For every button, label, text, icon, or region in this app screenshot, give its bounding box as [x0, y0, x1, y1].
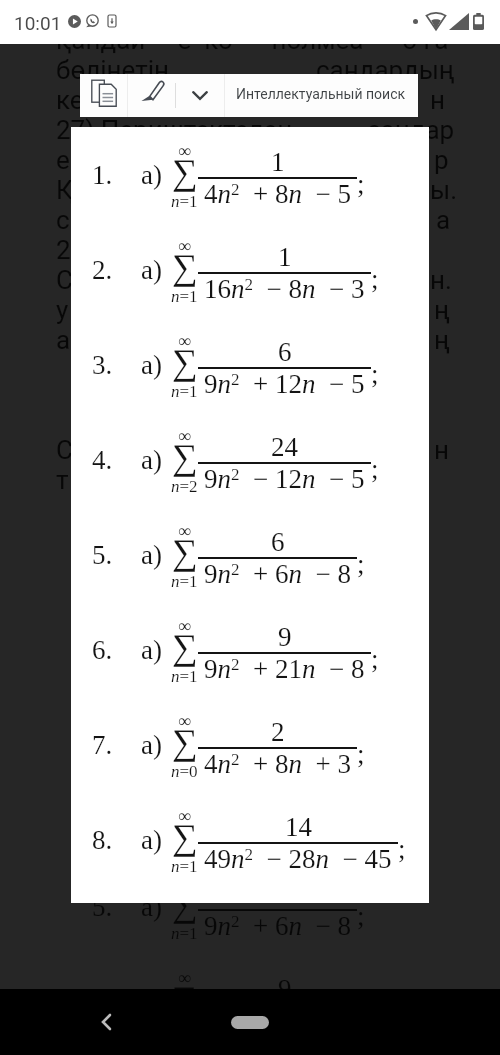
staticText: a)	[141, 350, 162, 380]
staticText: ке	[56, 85, 84, 115]
staticText: ∞	[178, 806, 191, 826]
staticText: 1	[278, 242, 292, 272]
staticText: n=1	[171, 192, 198, 211]
staticText: 4n2 + 8n − 5	[204, 179, 351, 209]
button[interactable]: More options	[176, 74, 224, 117]
staticText: a)	[141, 445, 162, 475]
staticText: 27) Периштектелен	[56, 115, 293, 145]
staticText: е	[56, 145, 70, 175]
staticText: 9	[278, 974, 292, 1004]
staticText: 4.	[92, 445, 113, 475]
staticText: қандай е кө полмеа о га	[56, 25, 449, 55]
staticText: ∞	[178, 711, 191, 731]
staticText: т	[56, 465, 69, 495]
staticText: ∞	[178, 236, 191, 256]
staticText: a)	[141, 540, 162, 570]
staticText: 9n2 + 21n − 8	[204, 1006, 365, 1036]
staticText: р	[434, 145, 449, 175]
staticText: ∑	[172, 884, 198, 924]
staticText: 9	[278, 622, 292, 652]
staticText: ;	[357, 169, 365, 199]
staticText: ∑	[172, 979, 198, 1019]
staticText: н	[430, 85, 445, 115]
button[interactable]: Интеллектуальный поиск	[225, 74, 418, 117]
staticText: ∑	[172, 532, 198, 572]
staticText: ;	[371, 454, 379, 484]
staticText: С	[56, 435, 73, 465]
staticText: 9n2 − 12n − 5	[204, 464, 365, 494]
staticText: ∞	[178, 968, 191, 988]
staticText: 5.	[92, 892, 113, 922]
staticText: a)	[141, 892, 162, 922]
staticText: n=1	[171, 924, 198, 943]
staticText: 2	[56, 235, 71, 265]
staticText: a)	[141, 160, 162, 190]
staticText: 9n2 + 6n − 8	[204, 559, 351, 589]
staticText: ;	[357, 739, 365, 769]
staticText: 10:01	[14, 12, 62, 34]
staticText: n=0	[171, 762, 198, 781]
staticText: ;	[357, 901, 365, 931]
staticText: ∑	[172, 247, 198, 287]
staticText: ;	[371, 359, 379, 389]
staticText: 6	[278, 337, 292, 367]
staticText: ң	[434, 295, 450, 325]
staticText: н	[434, 435, 449, 465]
staticText: n=1	[171, 287, 198, 306]
staticText: n=1	[171, 572, 198, 591]
staticText: бөлінетін	[56, 55, 169, 85]
button[interactable]: Highlight	[128, 74, 175, 117]
staticText: 14	[285, 812, 312, 842]
staticText: ∑	[172, 627, 198, 667]
staticText: ∞	[178, 616, 191, 636]
staticText: 49n2 − 28n − 45	[204, 844, 392, 874]
staticText: 5.	[92, 540, 113, 570]
staticText: 6	[271, 879, 285, 909]
staticText: a)	[141, 825, 162, 855]
staticText: 16n2 − 8n − 3	[204, 274, 365, 304]
staticText: 9n2 + 12n − 5	[204, 369, 365, 399]
staticText: ∑	[172, 152, 198, 192]
staticText: с	[56, 205, 70, 235]
button[interactable]: Back	[90, 1006, 122, 1038]
staticText: ∑	[172, 817, 198, 857]
staticText: a)	[141, 987, 162, 1017]
staticText: n=1	[171, 667, 198, 686]
staticText: н.	[430, 265, 452, 295]
staticText: 7.	[92, 730, 113, 760]
staticText: Интеллектуальный поиск	[236, 86, 406, 102]
staticText: ∑	[172, 722, 198, 762]
staticText: ∑	[172, 437, 198, 477]
staticText: a)	[141, 730, 162, 760]
staticText: сандар	[367, 115, 455, 145]
staticText: 24	[271, 432, 298, 462]
staticText: n=2	[171, 477, 198, 496]
staticText: ∑	[172, 342, 198, 382]
button[interactable]: Home	[231, 1016, 269, 1029]
staticText: 9n2 + 6n − 8	[204, 911, 351, 941]
staticText: ;	[398, 834, 406, 864]
staticText: 4n2 + 8n + 3	[204, 749, 351, 779]
staticText: ∞	[178, 331, 191, 351]
staticText: ;	[371, 644, 379, 674]
staticText: n=1	[171, 857, 198, 876]
staticText: Қ	[56, 175, 75, 205]
staticText: ∞	[178, 141, 191, 161]
staticText: а	[436, 205, 451, 235]
staticText: a)	[141, 635, 162, 665]
staticText: n=1	[171, 382, 198, 401]
staticText: сандардың	[316, 55, 455, 85]
staticText: 9n2 + 21n − 8	[204, 654, 365, 684]
staticText: ∞	[178, 426, 191, 446]
button[interactable]: Copy	[80, 74, 127, 117]
staticText: С	[56, 265, 73, 295]
staticText: 6	[271, 527, 285, 557]
staticText: 2.	[92, 255, 113, 285]
staticText: 6.	[92, 987, 113, 1017]
staticText: 3.	[92, 350, 113, 380]
staticText: 1	[271, 147, 285, 177]
staticText: 8.	[92, 825, 113, 855]
staticText: у	[56, 295, 69, 325]
